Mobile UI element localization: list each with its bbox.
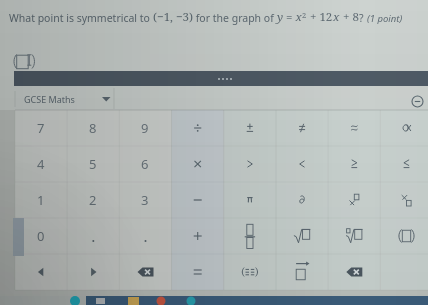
button[interactable]: square root [276, 218, 328, 254]
button[interactable]: power [328, 182, 380, 218]
button[interactable]: proportional to [380, 110, 428, 146]
button[interactable]: approximately [328, 110, 380, 146]
button[interactable]: minus [172, 182, 224, 218]
button[interactable]: partial derivative [276, 182, 328, 218]
button[interactable]: 0 [15, 218, 67, 254]
staticText: y = x [277, 9, 302, 25]
button[interactable]: greater than [224, 146, 276, 182]
button[interactable]: greater or equal [328, 146, 380, 182]
staticText: 2 [302, 10, 307, 20]
button[interactable]: pi [224, 182, 276, 218]
staticText: for the graph of [193, 11, 277, 25]
button[interactable]: not equal [276, 110, 328, 146]
button[interactable]: subscript [380, 182, 428, 218]
staticText: What point is symmetrical to [9, 11, 153, 25]
button[interactable]: plus minus [224, 110, 276, 146]
button[interactable]: 5 [67, 146, 119, 182]
staticText: 3 [141, 191, 149, 209]
button[interactable]: 1 [15, 182, 67, 218]
button[interactable]: decimal point [67, 218, 119, 254]
button[interactable]: 2 [67, 182, 119, 218]
staticText: (1 point) [367, 12, 403, 25]
staticText: (−1, −3) [153, 9, 193, 25]
staticText: GCSE Maths [24, 93, 75, 105]
button[interactable]: clear [328, 254, 380, 290]
button[interactable]: Help [411, 95, 424, 108]
button[interactable]: plus [172, 218, 224, 254]
staticText: x [333, 9, 340, 25]
button[interactable]: divide [172, 110, 224, 146]
button[interactable]: backspace [119, 254, 171, 290]
button[interactable]: 8 [67, 110, 119, 146]
staticText: 1 [37, 191, 45, 209]
staticText: ? [359, 11, 367, 25]
button[interactable]: matrix [224, 254, 276, 290]
staticText: 6 [141, 155, 149, 173]
button[interactable]: fraction [224, 218, 276, 254]
button[interactable]: equals [172, 254, 224, 290]
button[interactable]: vector [276, 254, 328, 290]
staticText: 4 [37, 155, 45, 173]
button[interactable]: comma [119, 218, 171, 254]
button[interactable]: less than [276, 146, 328, 182]
button[interactable]: 7 [15, 110, 67, 146]
button[interactable]: parentheses [380, 218, 428, 254]
staticText: + 8 [340, 9, 359, 25]
button[interactable]: 9 [119, 110, 171, 146]
button[interactable]: GCSE Maths [14, 88, 116, 109]
button[interactable]: move right [67, 254, 119, 290]
button[interactable]: multiply [172, 146, 224, 182]
button[interactable]: Answer field [12, 50, 40, 72]
staticText: 0 [37, 227, 45, 245]
button[interactable]: move left [15, 254, 67, 290]
button[interactable]: nth root [328, 218, 380, 254]
button[interactable]: 3 [119, 182, 171, 218]
staticText: 2 [89, 191, 97, 209]
staticText: 7 [37, 119, 45, 137]
button[interactable]: less or equal [380, 146, 428, 182]
staticText: 9 [141, 119, 149, 137]
button[interactable]: 4 [15, 146, 67, 182]
staticText: + 12 [307, 9, 333, 25]
staticText: 5 [89, 155, 97, 173]
button[interactable]: 6 [119, 146, 171, 182]
staticText: 8 [89, 119, 97, 137]
